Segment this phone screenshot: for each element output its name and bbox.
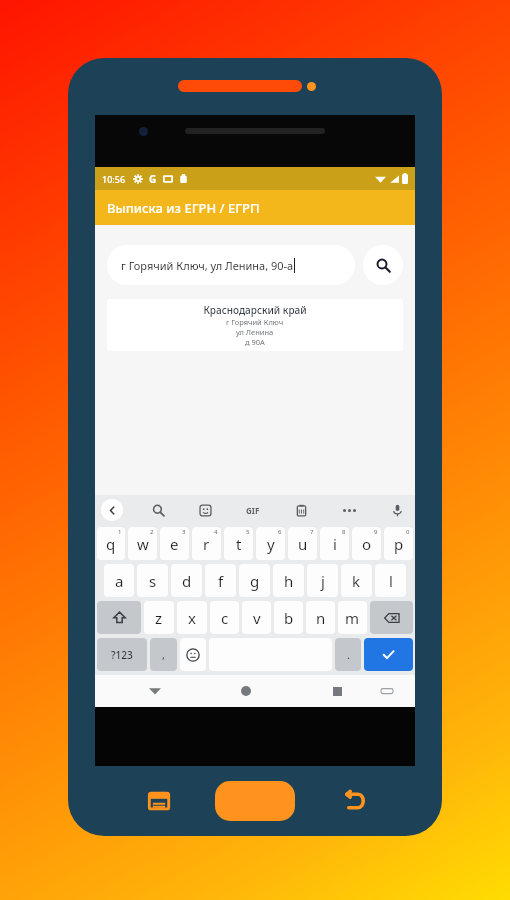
staticText: 9 [374,528,378,536]
button[interactable]: г Горячий Ключ, ул Ленина, 90-а [107,245,355,285]
staticText: д 90А [245,337,265,347]
staticText: 7 [310,528,314,536]
button[interactable]: Period [335,638,361,671]
button[interactable]: l [375,564,406,597]
staticText: u [298,534,308,554]
button[interactable]: r [192,527,221,560]
staticText: n [316,608,326,628]
button[interactable]: Выписка из ЕГРН / ЕГРП [95,190,415,225]
button[interactable]: Search [363,245,403,285]
button[interactable]: z [144,601,174,634]
staticText: c [221,608,229,628]
button[interactable]: o [352,527,381,560]
button[interactable]: Recents [142,784,176,818]
staticText: h [284,571,294,591]
button[interactable]: Clipboard [289,498,313,522]
staticText: a [115,571,124,591]
staticText: b [284,608,294,628]
button[interactable]: Краснодарский край [107,299,403,351]
button[interactable]: y [256,527,285,560]
staticText: ул Ленина [236,327,274,337]
staticText: y [267,534,275,554]
staticText: 4 [214,528,218,536]
button[interactable]: c [210,601,239,634]
staticText: o [362,534,372,554]
staticText: 2 [150,528,154,536]
staticText: i [333,534,337,554]
button[interactable]: Backspace [370,601,413,634]
button[interactable]: d [171,564,202,597]
button[interactable]: Home [215,781,295,821]
button[interactable]: s [137,564,168,597]
button[interactable]: e [160,527,189,560]
staticText: г Горячий Ключ, ул Ленина, 90-а [121,258,294,273]
staticText: g [250,571,260,591]
button[interactable]: Comma [150,638,177,671]
button[interactable]: p [384,527,413,560]
button[interactable]: ?123 [97,638,147,671]
button[interactable]: t [224,527,253,560]
button[interactable]: Enter [364,638,413,671]
button[interactable]: j [307,564,338,597]
staticText: GIF [246,505,260,516]
button[interactable]: q [97,527,125,560]
button[interactable]: Voice input [385,498,409,522]
staticText: 8 [342,528,346,536]
staticText: j [321,571,325,591]
staticText: t [236,534,242,554]
button[interactable]: v [242,601,271,634]
staticText: 6 [278,528,282,536]
staticText: w [137,534,149,554]
staticText: q [106,534,116,554]
staticText: f [218,571,224,591]
button[interactable]: Stickers [193,498,217,522]
staticText: 10:56 [102,173,126,185]
staticText: 1 [118,528,122,536]
button[interactable]: w [128,527,157,560]
staticText: s [149,571,157,591]
button[interactable]: m [338,601,367,634]
button[interactable]: More options [337,498,361,522]
staticText: e [170,534,179,554]
button[interactable]: b [274,601,303,634]
button[interactable]: a [104,564,134,597]
staticText: Выписка из ЕГРН / ЕГРП [107,199,260,217]
button[interactable]: Emoji [180,638,206,671]
button[interactable]: Home [233,678,259,704]
button[interactable]: i [320,527,349,560]
button[interactable]: Search [146,498,170,522]
staticText: Краснодарский край [203,303,307,317]
staticText: ?123 [111,648,133,662]
button[interactable]: Back [338,784,372,818]
button[interactable]: u [288,527,317,560]
button[interactable]: Recents [324,678,350,704]
staticText: m [345,608,360,628]
staticText: v [253,608,261,628]
button[interactable]: Collapse toolbar [101,499,123,521]
staticText: . [347,647,350,662]
button[interactable]: n [306,601,335,634]
staticText: r [203,534,210,554]
staticText: z [155,608,163,628]
button[interactable]: f [205,564,236,597]
staticText: l [389,571,393,591]
staticText: G [149,172,157,186]
button[interactable]: g [239,564,270,597]
staticText: 5 [246,528,250,536]
staticText: 0 [406,528,410,536]
staticText: d [182,571,192,591]
staticText: p [394,534,404,554]
staticText: k [352,571,361,591]
button[interactable]: Hide keyboard [142,678,168,704]
button[interactable]: Switch keyboard [374,678,400,704]
button[interactable]: Shift [97,601,141,634]
button[interactable]: h [273,564,304,597]
button[interactable]: k [341,564,372,597]
button[interactable]: x [177,601,207,634]
staticText: 3 [182,528,186,536]
button[interactable]: GIF [241,498,265,522]
staticText: x [188,608,196,628]
staticText: г Горячий Ключ [226,317,284,327]
staticText: , [162,647,165,662]
